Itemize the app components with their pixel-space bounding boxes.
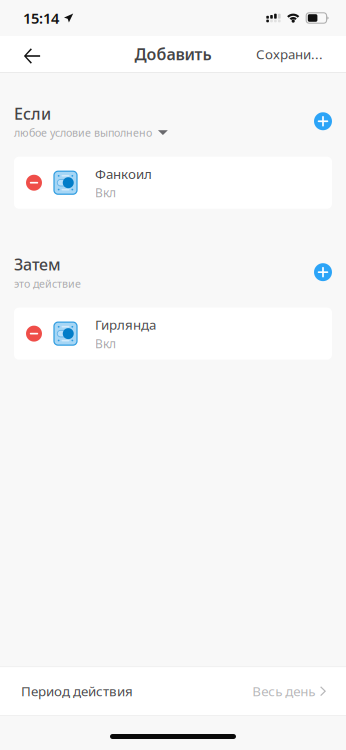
- staticText: Сохрани...: [256, 45, 323, 63]
- button[interactable]: Remove Фанкоил: [26, 175, 42, 191]
- staticText: Вкл: [95, 335, 116, 351]
- button[interactable]: Back: [10, 35, 54, 72]
- staticText: любое условие выполнено: [14, 125, 152, 140]
- button[interactable]: Remove Гирлянда: [26, 326, 42, 342]
- button[interactable]: Сохрани...: [250, 35, 329, 72]
- button[interactable]: Add: [314, 263, 332, 281]
- staticText: Весь день: [252, 682, 315, 700]
- staticText: Добавить: [134, 43, 211, 65]
- staticText: это действие: [14, 276, 81, 291]
- button[interactable]: Add: [314, 112, 332, 130]
- staticText: Фанкоил: [95, 165, 152, 183]
- staticText: Затем: [14, 254, 61, 275]
- button[interactable]: Фанкоил: [14, 157, 332, 209]
- staticText: Вкл: [95, 185, 116, 200]
- staticText: 15:14: [23, 8, 59, 28]
- button[interactable]: Период действия: [0, 667, 346, 715]
- staticText: Гирлянда: [95, 316, 156, 333]
- button[interactable]: Гирлянда: [14, 308, 332, 360]
- staticText: Если: [14, 103, 51, 124]
- staticText: Период действия: [21, 682, 133, 700]
